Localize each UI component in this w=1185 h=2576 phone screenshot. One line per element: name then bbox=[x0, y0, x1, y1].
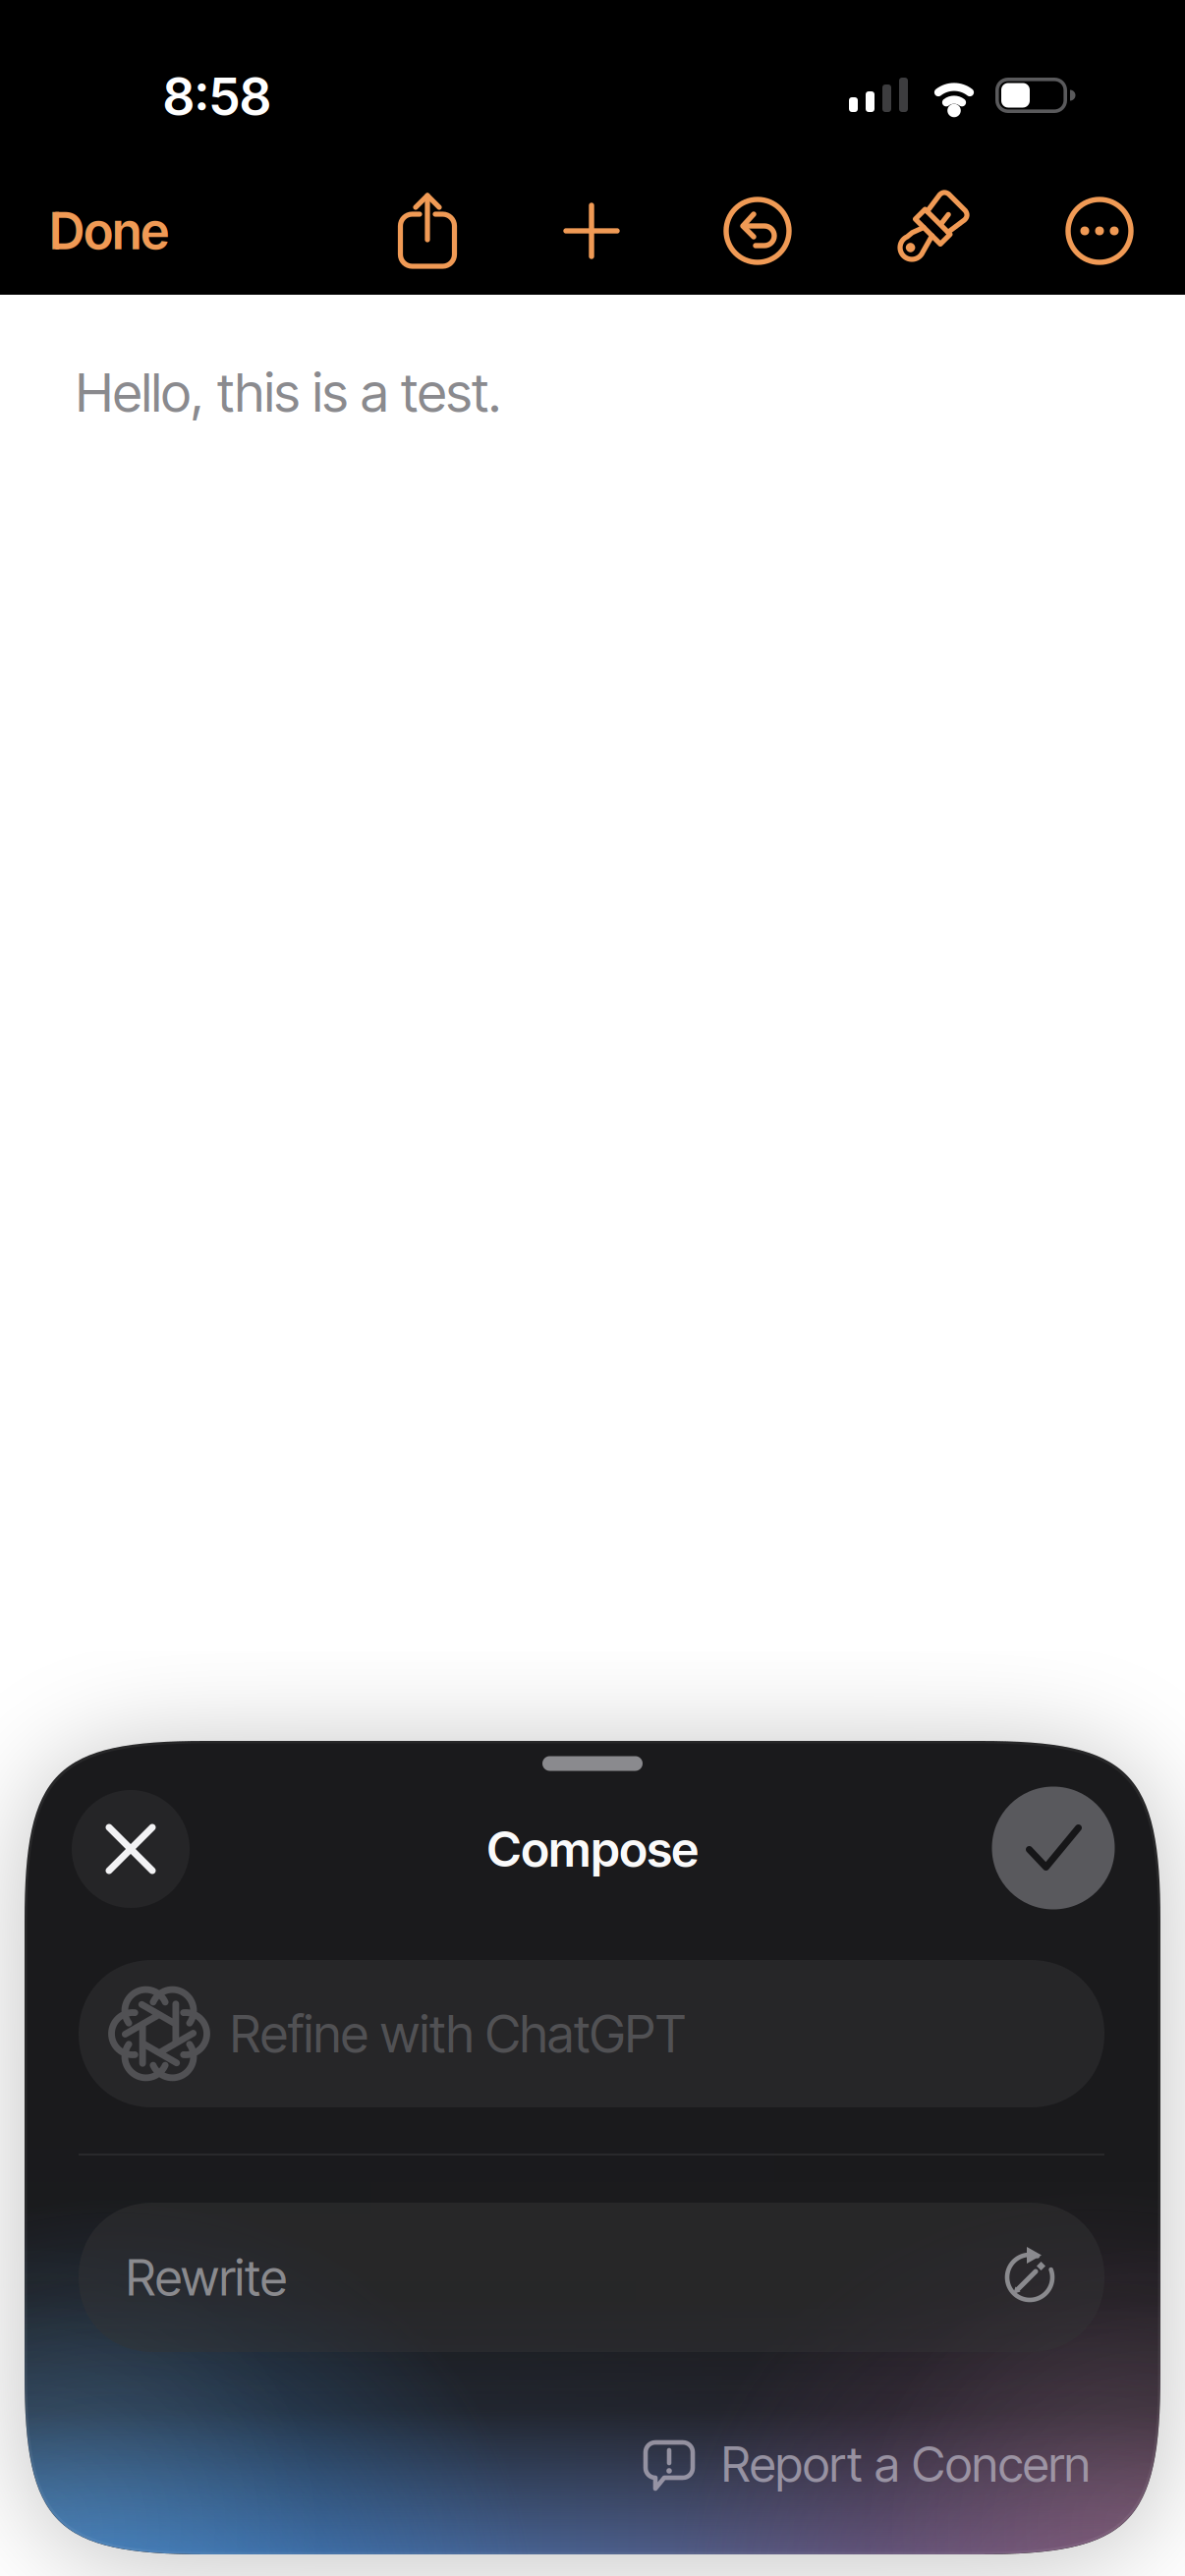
button[interactable]: Done bbox=[50, 200, 169, 261]
staticText: Report a Concern bbox=[721, 2435, 1091, 2493]
staticText: Hello, this is a test. bbox=[76, 360, 501, 425]
button[interactable]: Refine with ChatGPT bbox=[79, 1960, 1104, 2107]
button[interactable]: Format bbox=[881, 184, 976, 278]
staticText: 8:58 bbox=[163, 65, 271, 127]
button[interactable]: Report a Concern bbox=[79, 2435, 1104, 2493]
button[interactable]: Accept bbox=[992, 1787, 1115, 1909]
button[interactable]: Close bbox=[72, 1790, 190, 1908]
button[interactable]: Undo bbox=[713, 187, 802, 275]
button[interactable]: Insert bbox=[547, 187, 636, 275]
button[interactable]: More bbox=[1055, 187, 1144, 275]
staticText: Done bbox=[50, 200, 169, 261]
staticText: Refine with ChatGPT bbox=[230, 2003, 686, 2065]
staticText: Compose bbox=[487, 1820, 698, 1878]
button[interactable]: Rewrite bbox=[79, 2203, 1104, 2352]
button[interactable]: Share bbox=[383, 187, 472, 275]
staticText: Rewrite bbox=[126, 2247, 287, 2307]
